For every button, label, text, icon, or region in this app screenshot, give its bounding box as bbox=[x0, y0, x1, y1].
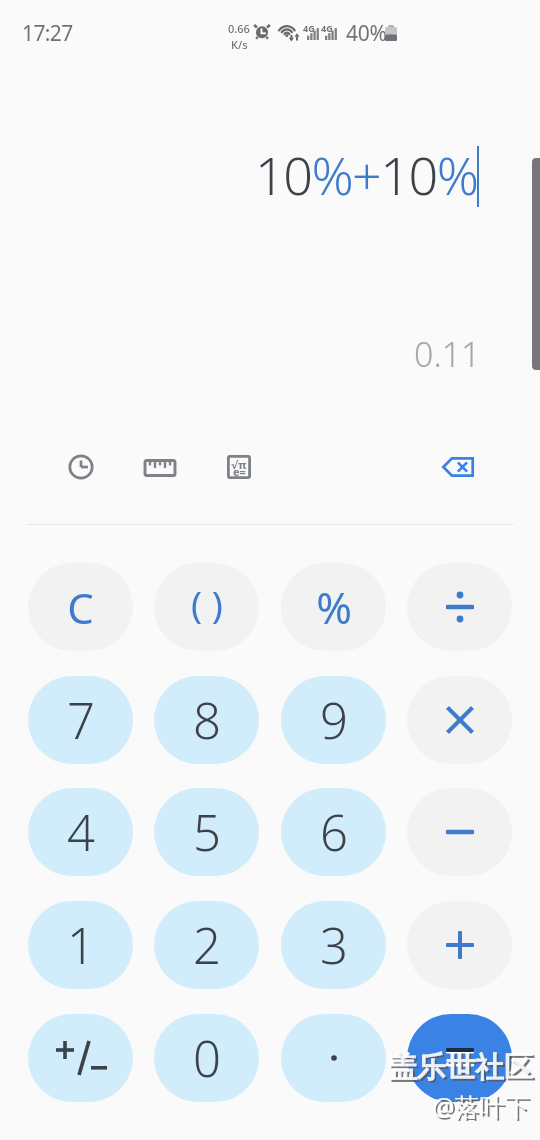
button[interactable]: Equals bbox=[407, 1014, 512, 1102]
staticText: 4G bbox=[303, 22, 315, 34]
staticText: 9 bbox=[320, 687, 348, 754]
staticText: 盖乐世社区 bbox=[388, 1049, 533, 1086]
staticText: 2 bbox=[193, 912, 221, 979]
button[interactable]: 0 bbox=[154, 1014, 259, 1102]
staticText: 盖乐世社区 bbox=[390, 1051, 535, 1088]
staticText: 4 bbox=[67, 799, 95, 866]
button[interactable]: History bbox=[57, 443, 105, 491]
button[interactable]: Plus bbox=[407, 901, 512, 989]
staticText: 10%+10% bbox=[255, 139, 478, 210]
staticText: ( ) bbox=[191, 578, 223, 628]
button[interactable]: Multiply bbox=[407, 676, 512, 764]
staticText: @落叶下 bbox=[432, 1089, 530, 1123]
staticText: √π bbox=[231, 457, 247, 472]
button[interactable]: % bbox=[281, 563, 386, 651]
staticText: 7 bbox=[67, 687, 95, 754]
staticText: 3 bbox=[320, 912, 348, 979]
button[interactable]: 4 bbox=[28, 788, 133, 876]
staticText: 1 bbox=[67, 912, 95, 979]
button[interactable]: ( ) bbox=[154, 563, 259, 651]
button[interactable]: Plus minus bbox=[28, 1014, 133, 1102]
staticText: 0.66 bbox=[228, 21, 250, 36]
staticText: 17:27 bbox=[22, 19, 73, 48]
button[interactable]: 6 bbox=[281, 788, 386, 876]
staticText: 5 bbox=[193, 799, 221, 866]
button[interactable]: 1 bbox=[28, 901, 133, 989]
staticText: e= bbox=[233, 464, 246, 479]
button[interactable]: 5 bbox=[154, 788, 259, 876]
button[interactable]: Scientific calculator bbox=[215, 443, 263, 491]
staticText: @落叶下 bbox=[434, 1091, 532, 1125]
staticText: 0 bbox=[193, 1025, 221, 1092]
button[interactable]: Unit converter bbox=[136, 444, 184, 492]
button[interactable]: C bbox=[28, 563, 133, 651]
button[interactable]: 7 bbox=[28, 676, 133, 764]
staticText: % bbox=[316, 578, 352, 637]
button[interactable]: 2 bbox=[154, 901, 259, 989]
staticText: 40% bbox=[346, 19, 387, 48]
staticText: 6 bbox=[320, 799, 348, 866]
button[interactable]: 3 bbox=[281, 901, 386, 989]
staticText: 0.11 bbox=[414, 331, 481, 371]
button[interactable]: Minus bbox=[407, 788, 512, 876]
button[interactable]: Divide bbox=[407, 563, 512, 651]
button[interactable]: Backspace bbox=[434, 443, 482, 491]
staticText: C bbox=[67, 579, 94, 636]
staticText: 4G bbox=[321, 22, 333, 34]
staticText: 8 bbox=[193, 687, 221, 754]
button[interactable]: 9 bbox=[281, 676, 386, 764]
button[interactable]: Decimal point bbox=[281, 1014, 386, 1102]
staticText: K/s bbox=[231, 37, 248, 52]
button[interactable]: 8 bbox=[154, 676, 259, 764]
